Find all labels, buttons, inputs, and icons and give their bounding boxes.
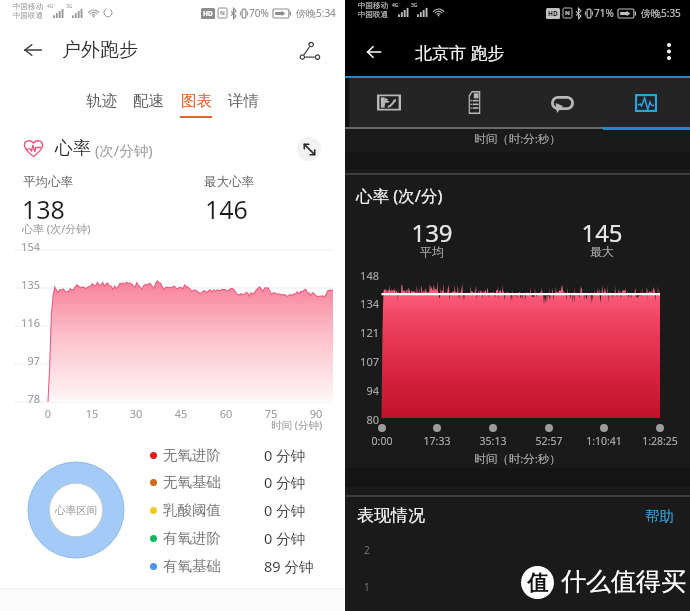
button[interactable]: 帮助 xyxy=(645,507,674,525)
staticText: 平均心率 xyxy=(23,174,73,190)
button[interactable]: 无氧基础 xyxy=(150,470,330,494)
staticText: 中国移动 xyxy=(358,1,388,10)
staticText: (次/分钟) xyxy=(95,140,153,160)
staticText: 1:28:25 xyxy=(633,434,687,448)
staticText: 北京市 跑步 xyxy=(415,41,505,64)
staticText: 75 xyxy=(257,406,285,421)
staticText: N xyxy=(220,9,225,17)
staticText: 配速 xyxy=(133,91,164,111)
button[interactable]: 详情 xyxy=(220,91,266,123)
staticText: 表现情况 xyxy=(357,505,425,526)
staticText: 平均 xyxy=(402,244,462,259)
staticText: 心率 (次/分钟) xyxy=(22,221,91,236)
staticText: 无氧进阶 xyxy=(163,446,221,464)
button[interactable]: More options xyxy=(655,37,683,65)
button[interactable]: 轨迹 xyxy=(78,91,124,123)
staticText: HD xyxy=(203,9,213,18)
staticText: 心率区间 xyxy=(40,504,112,517)
staticText: 什么值得买 xyxy=(561,566,686,597)
button[interactable]: 无氧进阶 xyxy=(150,443,330,467)
button[interactable]: Back xyxy=(359,37,389,67)
staticText: 45 xyxy=(167,406,195,421)
button[interactable]: 图表 xyxy=(173,91,219,123)
button[interactable]: 有氧进阶 xyxy=(150,526,330,550)
staticText: 中国移动 xyxy=(13,2,43,11)
staticText: 最大心率 xyxy=(204,174,254,190)
staticText: 傍晚5:35 xyxy=(641,6,681,20)
button[interactable]: Share xyxy=(294,36,324,66)
staticText: 0 分钟 xyxy=(264,500,306,520)
staticText: 心率 xyxy=(55,137,91,160)
staticText: 70% xyxy=(249,6,269,20)
staticText: 71% xyxy=(594,6,614,20)
staticText: 有氧基础 xyxy=(163,557,221,575)
staticText: 最大 xyxy=(572,244,632,259)
staticText: 97 xyxy=(10,353,40,368)
staticText: 116 xyxy=(10,315,40,330)
staticText: 121 xyxy=(353,325,379,340)
staticText: 0 分钟 xyxy=(264,445,306,465)
button[interactable]: Charts xyxy=(624,78,668,127)
staticText: 139 xyxy=(402,216,462,249)
staticText: 78 xyxy=(10,391,40,406)
staticText: 90 xyxy=(302,406,330,421)
staticText: 80 xyxy=(353,412,379,427)
staticText: 有氧进阶 xyxy=(163,529,221,547)
staticText: 时间（时:分:秒） xyxy=(355,131,680,147)
staticText: 3G xyxy=(411,2,418,9)
staticText: 15 xyxy=(78,406,106,421)
staticText: 0 xyxy=(34,406,62,421)
button[interactable]: Back xyxy=(19,36,47,64)
staticText: 89 分钟 xyxy=(264,556,314,576)
staticText: 107 xyxy=(353,354,379,369)
staticText: 乳酸阈值 xyxy=(163,501,221,519)
staticText: 详情 xyxy=(228,91,259,111)
staticText: 0 分钟 xyxy=(264,528,306,548)
staticText: 帮助 xyxy=(645,507,674,525)
staticText: 傍晚5:34 xyxy=(296,6,336,20)
staticText: 0 分钟 xyxy=(264,472,306,492)
staticText: 138 xyxy=(22,192,65,226)
button[interactable]: 有氧基础 xyxy=(150,554,330,578)
staticText: HD xyxy=(548,9,558,18)
staticText: 60 xyxy=(212,406,240,421)
button[interactable]: Details xyxy=(453,78,497,127)
staticText: 户外跑步 xyxy=(62,38,138,62)
button[interactable]: 乳酸阈值 xyxy=(150,498,330,522)
staticText: N xyxy=(565,9,570,17)
staticText: 52:57 xyxy=(522,434,576,448)
staticText: 30 xyxy=(122,406,150,421)
staticText: 135 xyxy=(10,277,40,292)
staticText: 35:13 xyxy=(466,434,520,448)
staticText: 134 xyxy=(353,296,379,311)
staticText: 0:00 xyxy=(355,434,409,448)
staticText: 1 xyxy=(364,580,370,594)
staticText: 4G xyxy=(392,2,399,9)
button[interactable]: Map xyxy=(367,78,411,127)
staticText: 中国联通 xyxy=(13,11,43,20)
staticText: 时间 (分钟) xyxy=(271,418,323,432)
button[interactable]: Expand chart xyxy=(297,137,321,161)
staticText: 3G xyxy=(66,3,73,10)
staticText: 无氧基础 xyxy=(163,473,221,491)
staticText: 145 xyxy=(572,216,632,249)
staticText: 2 xyxy=(364,543,370,557)
staticText: 4G xyxy=(47,3,54,10)
staticText: 148 xyxy=(353,268,379,283)
button[interactable]: 配速 xyxy=(125,91,171,123)
button[interactable]: Laps xyxy=(540,78,584,127)
staticText: 1:10:41 xyxy=(577,434,631,448)
staticText: 17:33 xyxy=(410,434,464,448)
staticText: 154 xyxy=(10,239,40,254)
staticText: 94 xyxy=(353,383,379,398)
staticText: 值 xyxy=(527,570,548,596)
staticText: 中国联通 xyxy=(358,10,388,19)
staticText: 轨迹 xyxy=(86,91,117,111)
staticText: 心率 (次/分) xyxy=(356,184,443,207)
staticText: 时间（时:分:秒） xyxy=(355,451,680,467)
staticText: 146 xyxy=(205,192,248,226)
staticText: 图表 xyxy=(181,91,212,111)
